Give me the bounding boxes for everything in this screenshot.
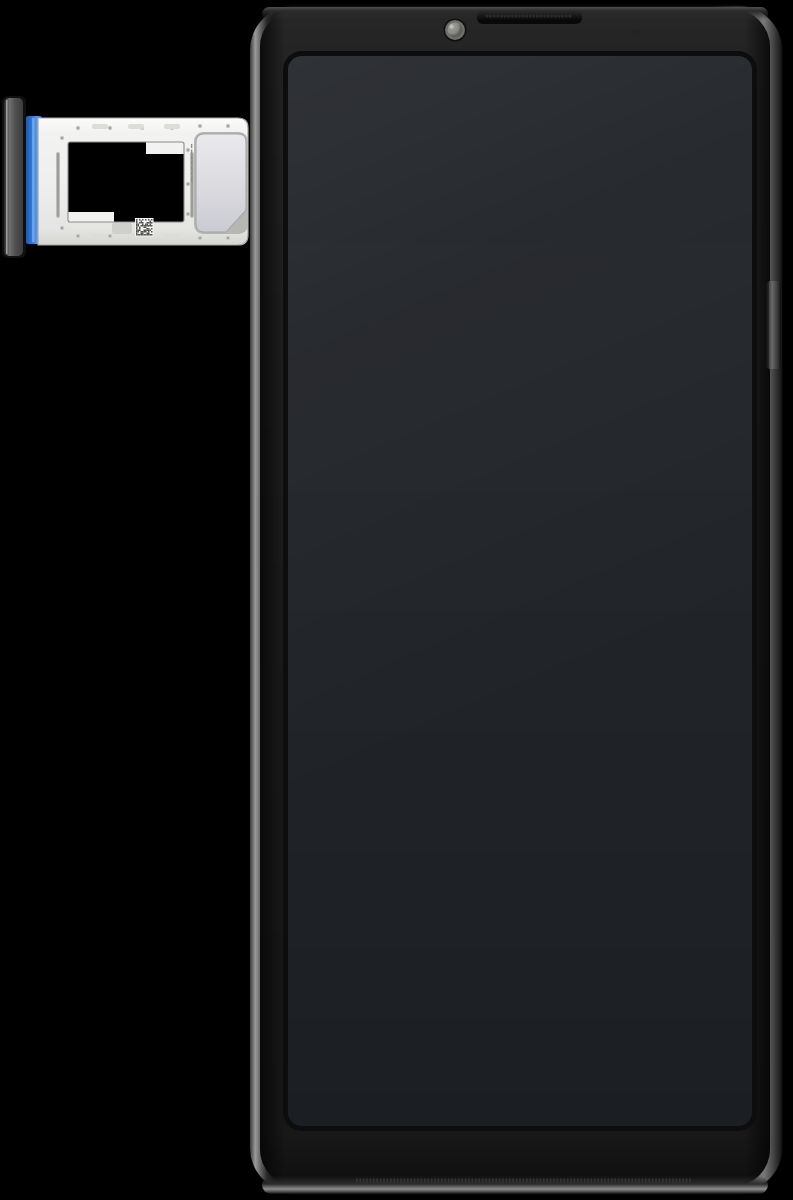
button[interactable]: Phone with SIM tray removed — [0, 0, 793, 1200]
